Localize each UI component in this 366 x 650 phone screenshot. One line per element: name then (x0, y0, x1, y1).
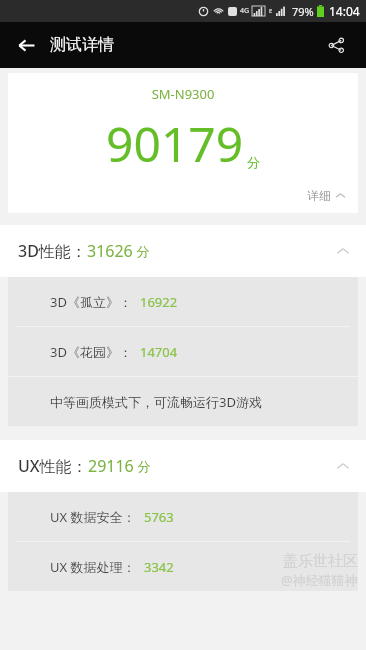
staticText: 分 (134, 457, 151, 475)
staticText: 29116 (88, 455, 134, 477)
button[interactable]: UX性能： (0, 440, 366, 492)
staticText: 31626 (87, 240, 133, 262)
button[interactable]: UX 数据处理： (8, 542, 358, 591)
staticText: 4G (240, 6, 250, 16)
staticText: SM-N9300 (8, 85, 358, 103)
button[interactable]: Share (316, 25, 356, 65)
staticText: 3D《花园》： (50, 343, 132, 361)
staticText: UX性能： (18, 455, 88, 477)
staticText: 16922 (140, 293, 178, 311)
button[interactable]: Back (8, 27, 44, 63)
button[interactable]: 3D性能： (0, 225, 366, 277)
staticText: @神经猫猫神 (281, 571, 358, 589)
staticText: 详细 (307, 188, 331, 203)
button[interactable]: 3D《孤立》： (8, 277, 358, 326)
staticText: 3D《孤立》： (50, 293, 132, 311)
staticText: UX 数据处理： (50, 558, 136, 576)
staticText: 分 (247, 154, 260, 170)
staticText: 分 (133, 242, 150, 260)
staticText: 90179 (106, 111, 244, 176)
staticText: 5763 (144, 508, 174, 526)
staticText: 3D性能： (18, 240, 87, 262)
staticText: 盖乐世社区 (283, 552, 358, 571)
staticText: E (269, 7, 273, 15)
staticText: 测试详情 (50, 35, 114, 55)
staticText: UX 数据安全： (50, 508, 136, 526)
button[interactable]: 详细 (307, 188, 346, 203)
button[interactable]: SM-N9300 (8, 73, 358, 213)
staticText: 3342 (144, 558, 174, 576)
button[interactable]: UX 数据安全： (8, 492, 358, 541)
staticText: 14:04 (329, 3, 360, 19)
button[interactable]: 3D《花园》： (8, 327, 358, 376)
staticText: 中等画质模式下，可流畅运行3D游戏 (50, 393, 262, 411)
staticText: 79% (292, 4, 314, 19)
staticText: 14704 (140, 343, 178, 361)
